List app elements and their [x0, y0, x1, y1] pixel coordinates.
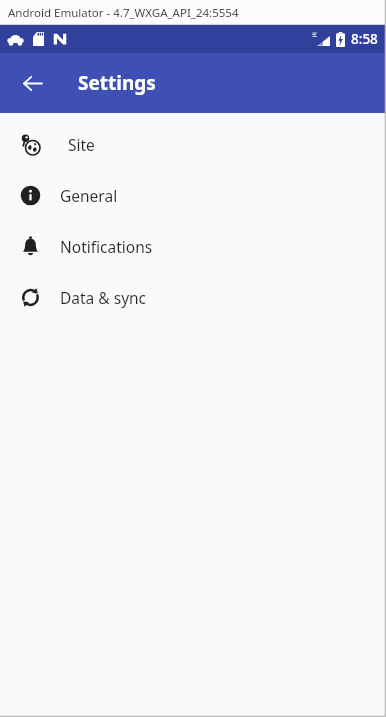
staticText: Android Emulator - 4.7_WXGA_API_24:5554: [8, 5, 239, 21]
staticText: General: [60, 185, 118, 206]
staticText: 8:58: [351, 30, 378, 48]
button[interactable]: General: [0, 170, 386, 221]
button[interactable]: Data & sync: [0, 272, 386, 323]
staticText: Data & sync: [60, 287, 147, 308]
button[interactable]: Site: [0, 119, 386, 170]
staticText: Settings: [78, 70, 156, 96]
button[interactable]: Back: [12, 63, 52, 103]
button[interactable]: Notifications: [0, 221, 386, 272]
staticText: Notifications: [60, 236, 153, 257]
staticText: Site: [68, 134, 95, 155]
